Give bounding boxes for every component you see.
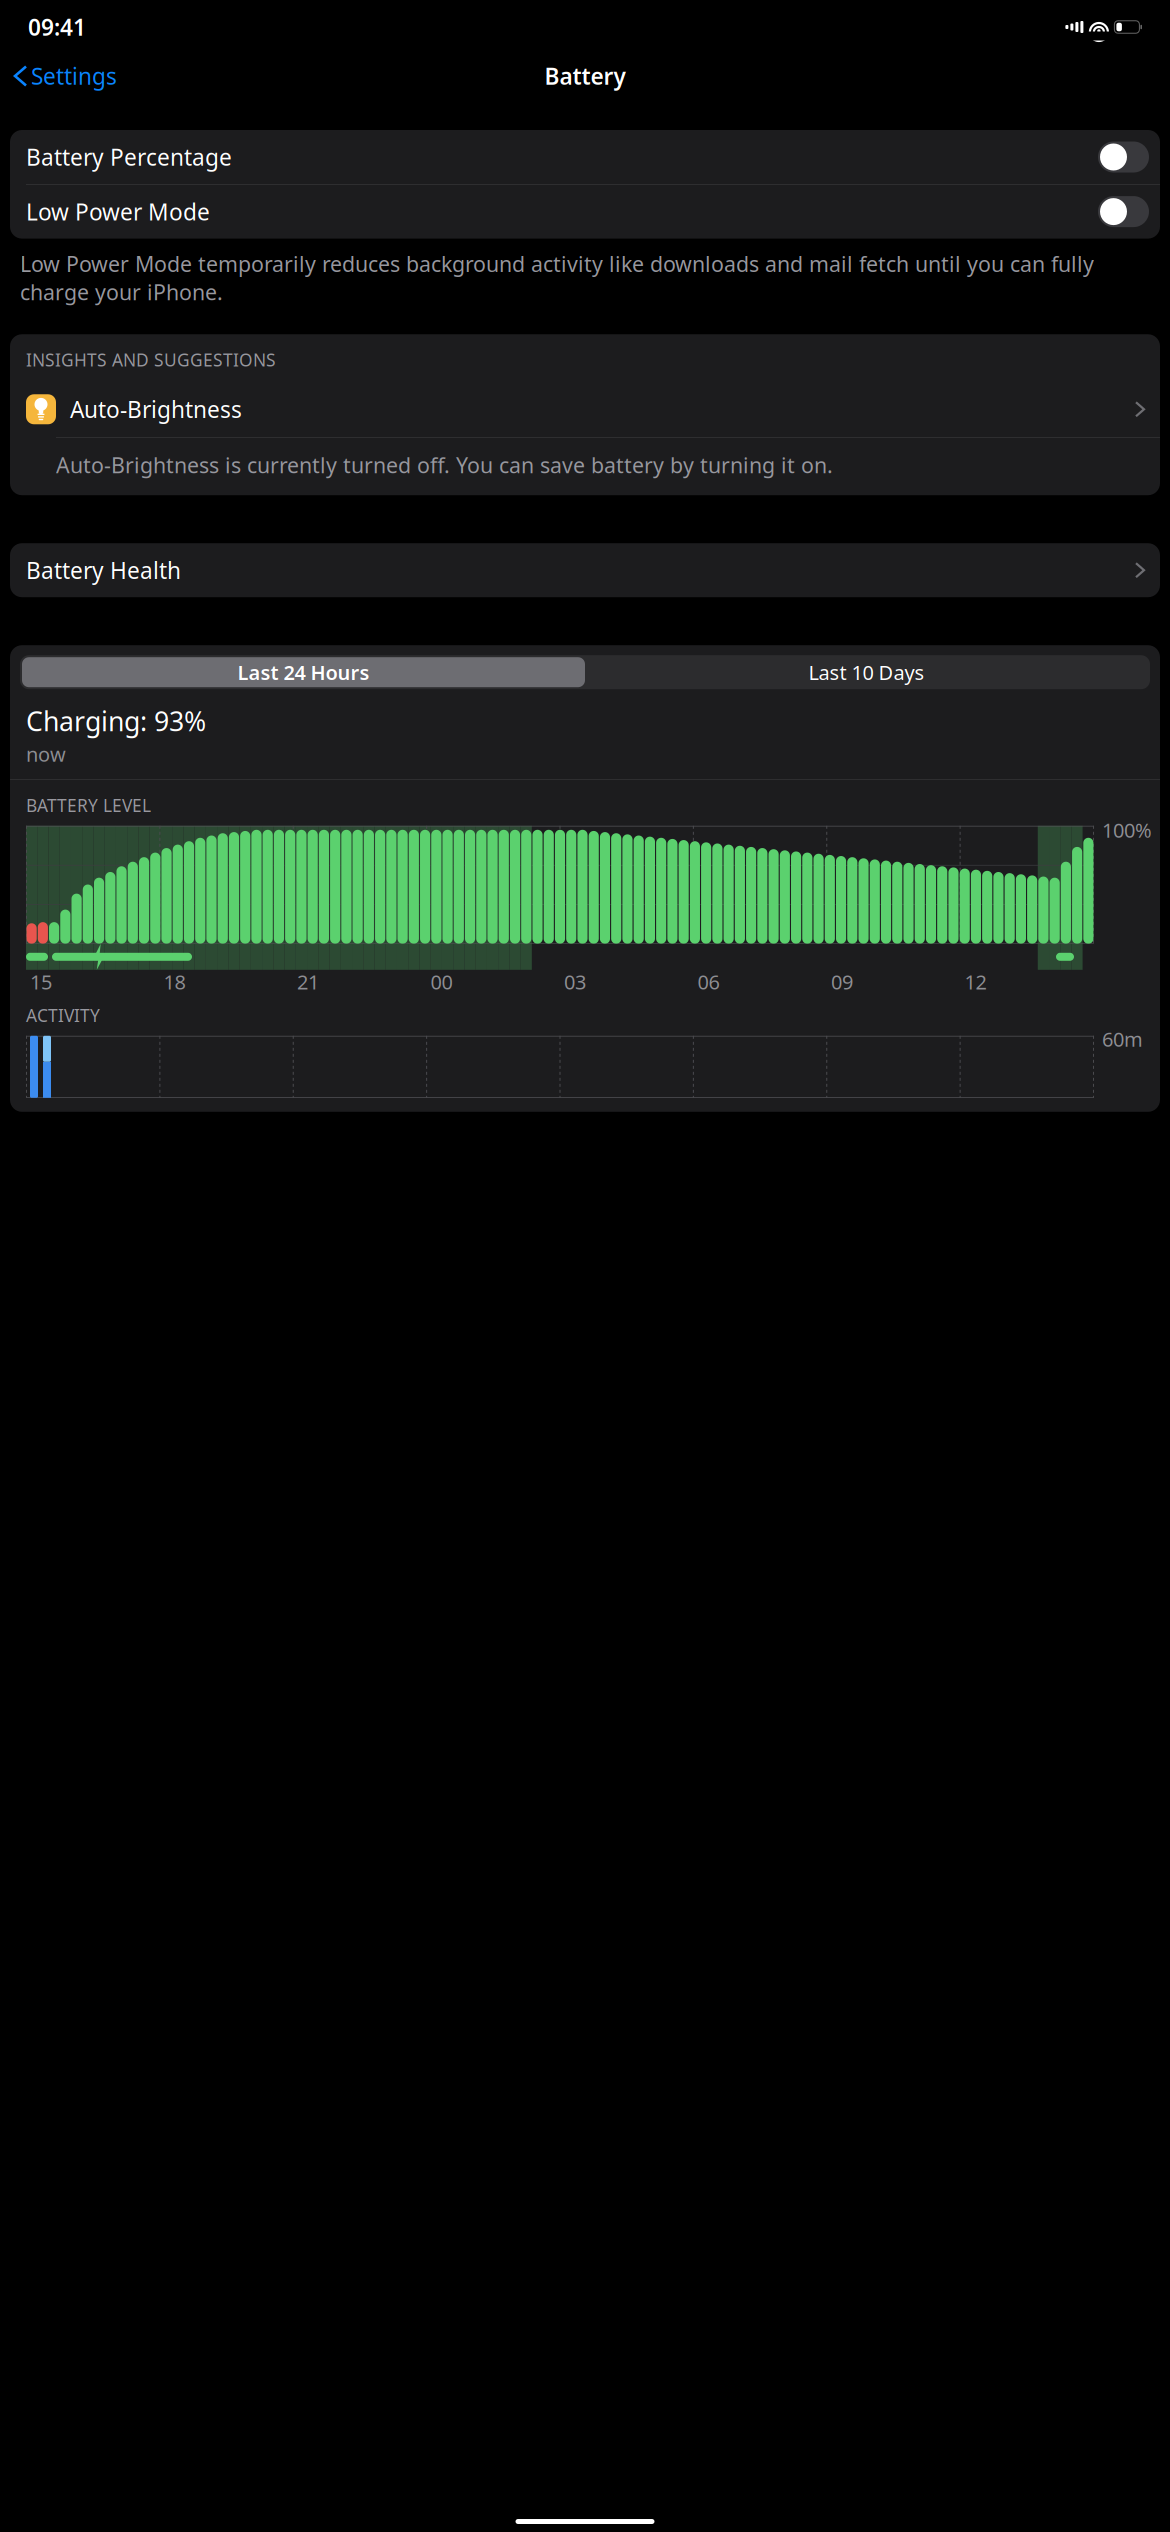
staticText: Battery bbox=[544, 61, 625, 91]
staticText: 09 bbox=[831, 968, 853, 995]
staticText: Auto-Brightness is currently turned off.… bbox=[56, 451, 833, 479]
staticText: 12 bbox=[964, 968, 986, 995]
button[interactable]: Last 10 Days bbox=[585, 657, 1148, 687]
staticText: Auto-Brightness bbox=[70, 394, 242, 424]
staticText: Settings bbox=[31, 61, 117, 91]
button[interactable]: Auto-Brightness bbox=[10, 381, 1160, 437]
staticText: 21 bbox=[297, 968, 319, 995]
staticText: 00 bbox=[430, 968, 452, 995]
staticText: 06 bbox=[697, 968, 719, 995]
button[interactable]: Battery Health bbox=[10, 543, 1160, 597]
staticText: Battery Percentage bbox=[26, 142, 232, 172]
button[interactable]: Battery Percentage bbox=[10, 130, 1160, 184]
staticText: Last 10 Days bbox=[808, 659, 924, 685]
button[interactable]: Last 24 Hours bbox=[22, 657, 585, 687]
staticText: Low Power Mode temporarily reduces backg… bbox=[20, 250, 1094, 306]
button[interactable]: Low Power Mode bbox=[10, 185, 1160, 239]
staticText: Low Power Mode bbox=[26, 196, 210, 227]
staticText: ACTIVITY bbox=[26, 1004, 100, 1027]
staticText: now bbox=[26, 741, 66, 767]
staticText: 03 bbox=[564, 968, 586, 995]
staticText: Charging: 93% bbox=[26, 703, 206, 739]
staticText: INSIGHTS AND SUGGESTIONS bbox=[26, 348, 276, 371]
staticText: 18 bbox=[163, 968, 185, 995]
staticText: 100% bbox=[1102, 817, 1152, 843]
staticText: 60m bbox=[1102, 1026, 1143, 1052]
staticText: 15 bbox=[30, 968, 52, 995]
button[interactable]: Settings bbox=[15, 55, 125, 97]
staticText: 09:41 bbox=[28, 12, 86, 42]
staticText: BATTERY LEVEL bbox=[26, 794, 151, 817]
staticText: Last 24 Hours bbox=[237, 659, 369, 685]
staticText: Battery Health bbox=[26, 555, 181, 585]
